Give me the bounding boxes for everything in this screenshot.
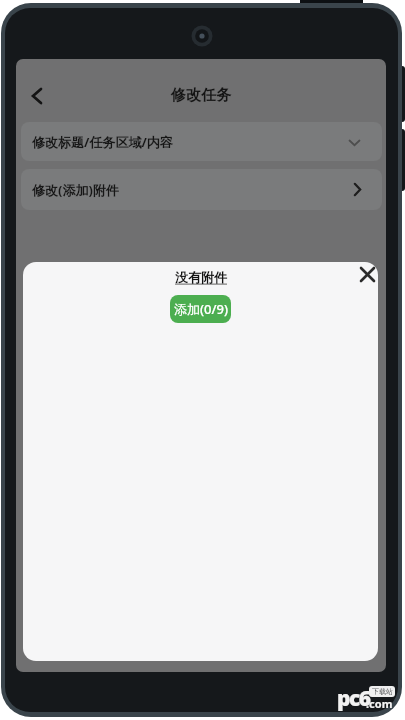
- staticText: 下载站: [372, 687, 393, 696]
- staticText: 没有附件: [175, 269, 227, 285]
- button[interactable]: [353, 262, 378, 288]
- button[interactable]: 修改(添加)附件: [21, 169, 382, 210]
- staticText: 修改任务: [171, 86, 231, 105]
- button[interactable]: [22, 81, 52, 111]
- staticText: 添加(0/9): [174, 300, 228, 318]
- staticText: pc6: [337, 684, 370, 713]
- staticText: .com: [366, 696, 393, 711]
- button[interactable]: 添加(0/9): [170, 295, 231, 323]
- staticText: 修改(添加)附件: [32, 181, 119, 199]
- staticText: 修改标题/任务区域/内容: [32, 133, 173, 151]
- button[interactable]: 修改标题/任务区域/内容: [21, 122, 382, 161]
